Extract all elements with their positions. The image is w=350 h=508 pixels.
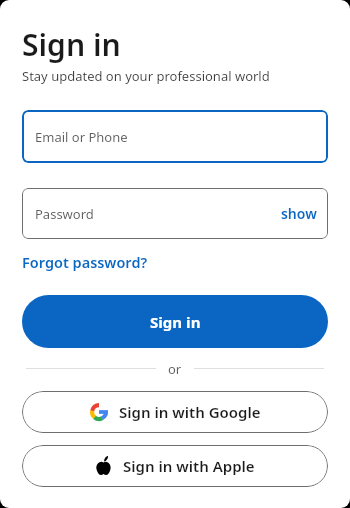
button[interactable]: Forgot password? (22, 253, 148, 273)
staticText: or (168, 360, 182, 376)
button[interactable]: show (281, 204, 317, 223)
staticText: Sign in (150, 312, 201, 332)
staticText: Sign in with Google (119, 402, 261, 422)
button[interactable]: Email or Phone (22, 110, 328, 163)
button[interactable]: Google (22, 391, 328, 433)
staticText: Forgot password? (22, 253, 148, 273)
staticText: Sign in (22, 24, 121, 65)
button[interactable]: Sign in (22, 295, 328, 348)
other: Apple (95, 456, 112, 476)
other: Google (90, 403, 108, 421)
staticText: Stay updated on your professional world (22, 67, 270, 85)
staticText: show (281, 204, 317, 223)
staticText: Password (35, 205, 281, 223)
staticText: Sign in with Apple (123, 456, 255, 476)
staticText: Email or Phone (35, 128, 128, 146)
button[interactable]: Password (22, 188, 328, 239)
button[interactable]: Apple (22, 445, 328, 487)
